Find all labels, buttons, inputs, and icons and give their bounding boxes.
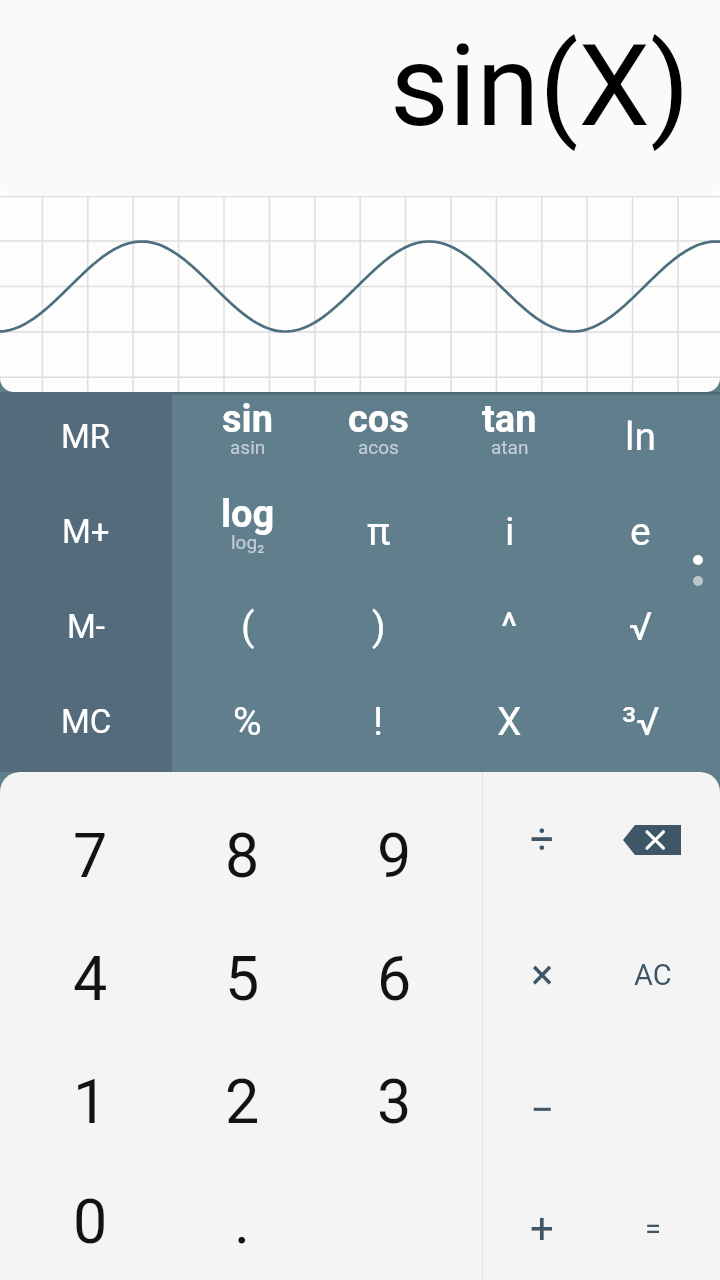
staticText: 8 bbox=[225, 820, 260, 891]
staticText: MC bbox=[61, 702, 112, 741]
staticText: ^ bbox=[501, 604, 518, 650]
staticText: e bbox=[630, 509, 651, 555]
staticText: asin bbox=[230, 436, 266, 458]
staticText: √ bbox=[629, 604, 653, 650]
button[interactable]: 9 bbox=[318, 794, 470, 917]
button[interactable]: 4 bbox=[14, 917, 166, 1040]
staticText: cos bbox=[348, 397, 409, 442]
staticText: × bbox=[531, 950, 554, 999]
button[interactable]: ln bbox=[575, 392, 706, 487]
button[interactable]: MR bbox=[0, 392, 172, 487]
button[interactable]: Backspace bbox=[601, 772, 720, 907]
staticText: X bbox=[497, 699, 522, 745]
button[interactable]: 8 bbox=[166, 794, 318, 917]
staticText: sin bbox=[222, 397, 273, 442]
staticText: M+ bbox=[62, 512, 110, 551]
button[interactable]: Subtract bbox=[483, 1042, 601, 1177]
button[interactable]: sin bbox=[182, 392, 313, 487]
staticText: MR bbox=[61, 417, 111, 456]
button[interactable]: 6 bbox=[318, 917, 470, 1040]
button[interactable]: Multiply bbox=[483, 907, 601, 1042]
staticText: 3 bbox=[377, 1066, 412, 1137]
button[interactable]: Add bbox=[483, 1177, 601, 1280]
staticText: 5 bbox=[225, 943, 260, 1014]
staticText: M- bbox=[67, 607, 105, 646]
button[interactable]: X bbox=[444, 677, 575, 772]
staticText: 6 bbox=[377, 943, 412, 1014]
staticText: sin(X) bbox=[390, 19, 690, 153]
staticText: + bbox=[530, 1204, 554, 1253]
staticText: 1 bbox=[73, 1066, 108, 1137]
staticText: atan bbox=[491, 436, 529, 458]
button[interactable]: log bbox=[182, 487, 313, 582]
button[interactable]: 0 bbox=[14, 1163, 166, 1280]
button[interactable]: = bbox=[601, 1177, 720, 1280]
staticText: ÷ bbox=[530, 815, 554, 864]
staticText: ! bbox=[373, 699, 384, 745]
button[interactable]: ^ bbox=[444, 582, 575, 677]
button[interactable]: 2 bbox=[166, 1040, 318, 1163]
button[interactable]: i bbox=[444, 487, 575, 582]
staticText: ( bbox=[241, 604, 255, 650]
staticText: . bbox=[234, 1186, 251, 1257]
button[interactable]: % bbox=[182, 677, 313, 772]
staticText: log bbox=[221, 492, 275, 537]
staticText: 9 bbox=[377, 820, 412, 891]
staticText: tan bbox=[482, 397, 537, 442]
button[interactable]: cos bbox=[313, 392, 444, 487]
staticText: − bbox=[530, 1085, 555, 1134]
button[interactable]: e bbox=[575, 487, 706, 582]
staticText: 2 bbox=[225, 1066, 260, 1137]
staticText: % bbox=[233, 699, 262, 745]
staticText: 0 bbox=[73, 1186, 108, 1257]
staticText: AC bbox=[634, 958, 672, 992]
button[interactable]: √ bbox=[575, 582, 706, 677]
staticText: 4 bbox=[73, 943, 108, 1014]
button[interactable]: Divide bbox=[483, 772, 601, 907]
staticText: ln bbox=[625, 414, 657, 460]
button[interactable]: 3 bbox=[318, 1040, 470, 1163]
button[interactable]: AC bbox=[601, 907, 720, 1042]
button[interactable]: ) bbox=[313, 582, 444, 677]
button[interactable]: 7 bbox=[14, 794, 166, 917]
button[interactable]: ³√ bbox=[575, 677, 706, 772]
button[interactable]: . bbox=[166, 1163, 318, 1280]
staticText: ³√ bbox=[622, 699, 660, 745]
button[interactable]: ( bbox=[182, 582, 313, 677]
button[interactable]: M- bbox=[0, 582, 172, 677]
staticText: = bbox=[645, 1212, 661, 1246]
staticText: 7 bbox=[73, 820, 108, 891]
staticText: π bbox=[367, 509, 391, 555]
button[interactable]: MC bbox=[0, 677, 172, 772]
button[interactable]: 5 bbox=[166, 917, 318, 1040]
staticText: ) bbox=[372, 604, 386, 650]
staticText: acos bbox=[358, 436, 399, 458]
staticText: i bbox=[505, 509, 515, 555]
button[interactable]: 1 bbox=[14, 1040, 166, 1163]
button[interactable]: π bbox=[313, 487, 444, 582]
staticText: log₂ bbox=[231, 531, 265, 553]
button[interactable]: tan bbox=[444, 392, 575, 487]
button[interactable]: ! bbox=[313, 677, 444, 772]
button[interactable]: M+ bbox=[0, 487, 172, 582]
